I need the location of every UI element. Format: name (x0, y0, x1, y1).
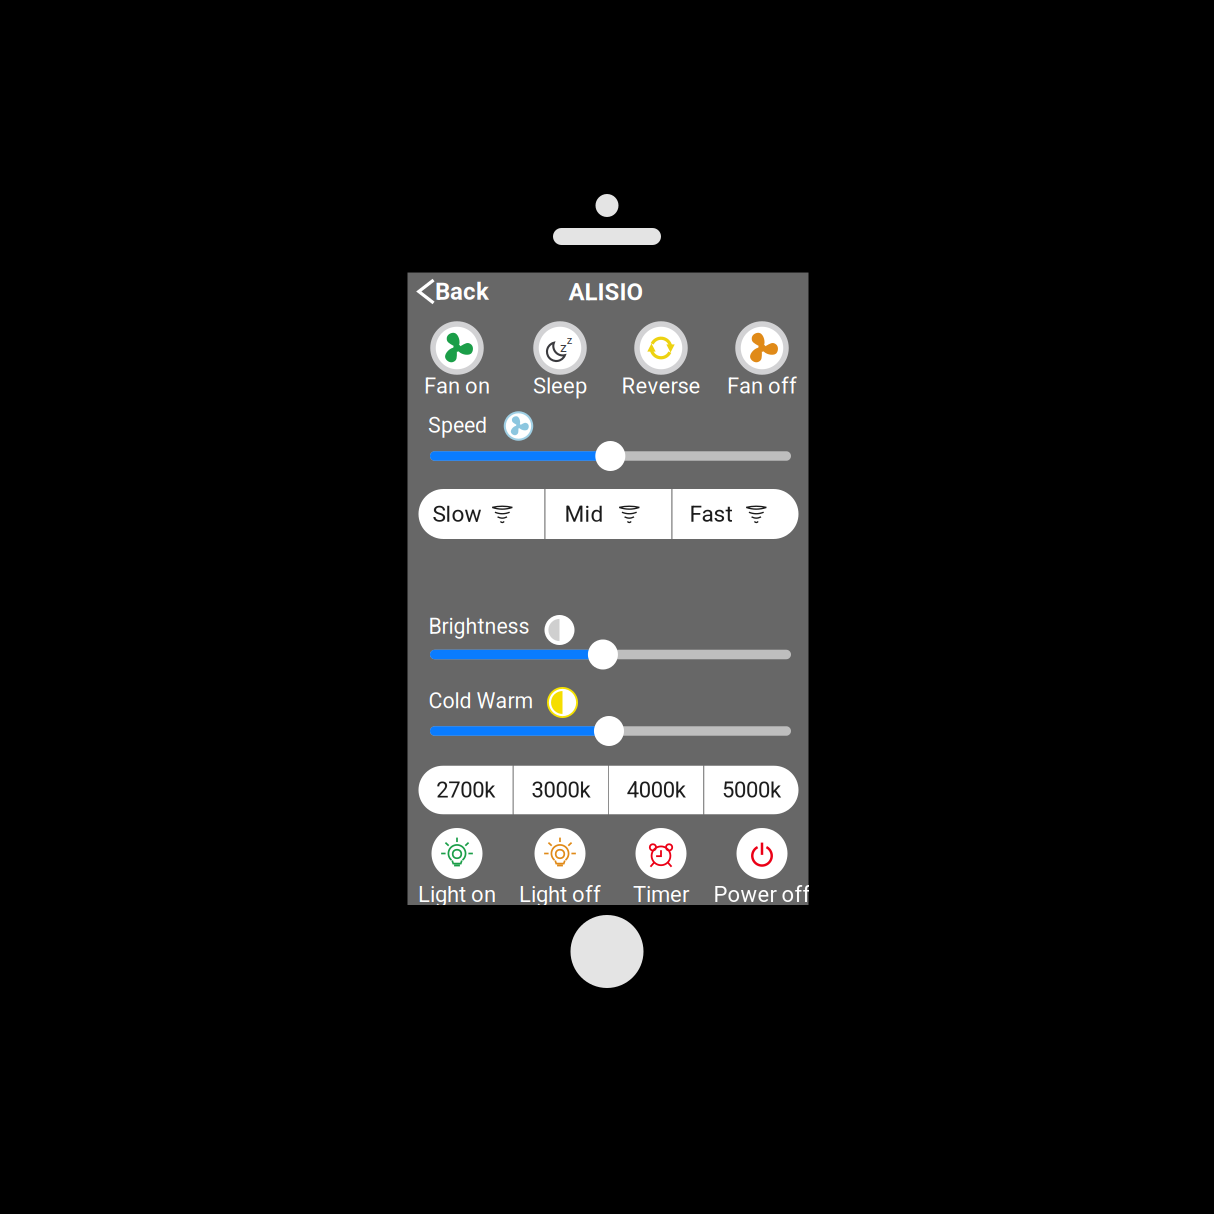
button[interactable]: Fan off (714, 321, 810, 402)
staticText: Brightness (428, 614, 529, 639)
button[interactable]: Brightness (588, 639, 618, 669)
button[interactable]: Mid (545, 489, 671, 539)
button[interactable]: Light off (512, 828, 608, 911)
staticText: Fan off (727, 373, 797, 399)
staticText: Mid (564, 501, 603, 527)
button[interactable]: Fast (672, 489, 798, 539)
staticText: Fast (689, 501, 732, 527)
staticText: Sleep (533, 373, 587, 399)
staticText: 5000k (722, 777, 781, 803)
staticText: Speed (428, 413, 487, 438)
staticText: Light off (519, 882, 601, 907)
staticText: Timer (633, 882, 689, 907)
staticText: ALISIO (568, 278, 643, 306)
button[interactable]: Cold Warm (594, 716, 624, 746)
staticText: 3000k (531, 777, 590, 803)
staticText: Cold Warm (428, 688, 533, 713)
button[interactable]: Power off (714, 828, 810, 911)
button[interactable]: Reverse (613, 321, 709, 402)
button[interactable]: Back (407, 272, 493, 314)
staticText: Power off (713, 882, 810, 907)
staticText: 2700k (436, 777, 495, 803)
button[interactable]: Fan on (409, 321, 505, 402)
button[interactable]: Speed (595, 441, 625, 471)
button[interactable]: Light on (409, 828, 505, 911)
staticText: Reverse (621, 373, 700, 399)
button[interactable]: z (512, 321, 608, 402)
staticText: Fan on (424, 373, 490, 399)
staticText: Light on (418, 882, 496, 907)
staticText: z (560, 339, 567, 355)
button[interactable]: 3000k (514, 766, 608, 814)
button[interactable]: Timer (613, 828, 709, 911)
staticText: Slow (432, 501, 481, 527)
button[interactable]: Slow (418, 489, 544, 539)
button[interactable]: 5000k (704, 766, 798, 814)
staticText: z (567, 334, 573, 347)
button[interactable]: 2700k (418, 766, 513, 814)
staticText: Back (435, 277, 489, 305)
staticText: 4000k (627, 777, 686, 803)
button[interactable]: 4000k (609, 766, 703, 814)
